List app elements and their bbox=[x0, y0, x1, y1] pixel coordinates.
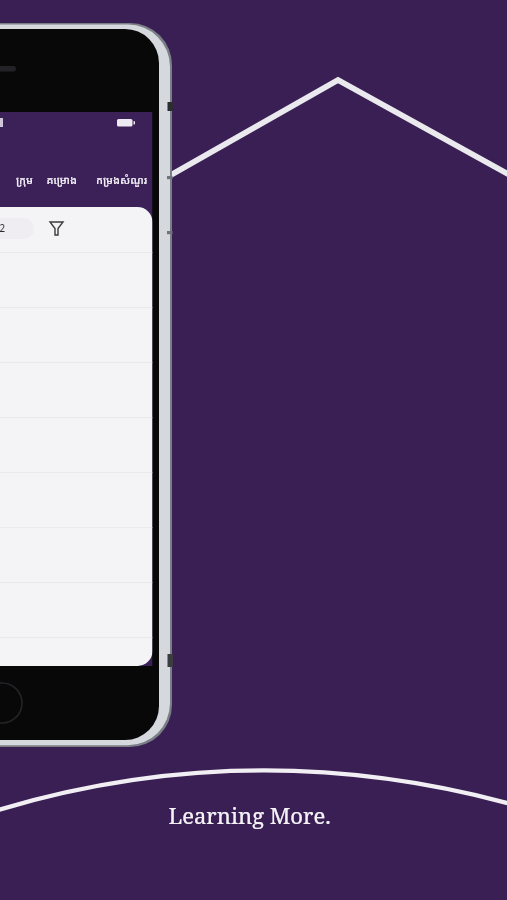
button[interactable]: Learning More promotional slide with pho… bbox=[0, 0, 507, 900]
